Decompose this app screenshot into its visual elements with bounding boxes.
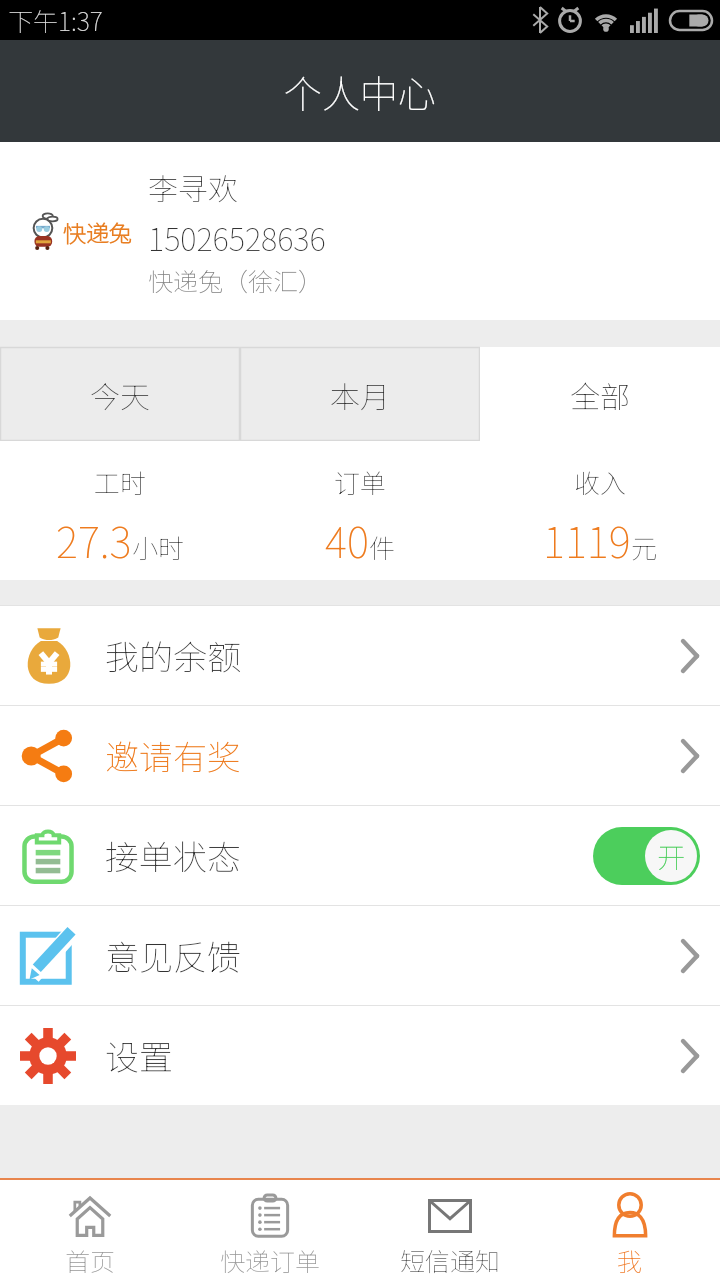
staticText: 接单状态 [105,831,241,880]
staticText: 我 [617,1242,643,1278]
button[interactable]: 今天 [0,347,240,441]
staticText: 40 [325,509,369,570]
button[interactable]: 设置 [0,1006,720,1105]
button[interactable]: 接单状态 [0,806,720,905]
staticText: 收入 [574,463,627,501]
staticText: 元 [631,528,658,566]
staticText: 小时 [132,528,185,566]
staticText: 订单 [334,463,387,501]
button[interactable]: 邀请有奖 [0,706,720,805]
button[interactable]: 我 [540,1180,720,1280]
staticText: 本月 [330,373,390,416]
staticText: 快递兔（徐汇） [148,262,324,298]
staticText: 快递兔 [63,215,132,248]
staticText: 短信通知 [400,1242,501,1278]
staticText: 工时 [94,463,147,501]
staticText: 27.3 [56,509,132,570]
staticText: 今天 [90,373,150,416]
button[interactable]: 短信通知 [360,1180,540,1280]
button[interactable]: 快递订单 [180,1180,360,1280]
button[interactable]: 快递兔 [0,142,720,320]
staticText: 设置 [105,1031,173,1080]
button[interactable]: 本月 [240,347,480,441]
staticText: 李寻欢 [148,165,238,208]
staticText: 意见反馈 [105,931,241,980]
button[interactable]: 首页 [0,1180,180,1280]
button[interactable]: 开 [593,827,700,885]
staticText: 全部 [570,373,630,416]
staticText: 个人中心 [284,64,437,119]
staticText: 快递订单 [220,1242,321,1278]
staticText: 件 [369,528,396,566]
staticText: 首页 [65,1242,116,1278]
staticText: 我的余额 [105,631,241,680]
button[interactable]: 全部 [480,347,720,441]
staticText: 1119 [543,509,631,570]
staticText: 开 [657,836,686,877]
staticText: 15026528636 [148,215,326,260]
button[interactable]: 我的余额 [0,606,720,705]
button[interactable]: 意见反馈 [0,906,720,1005]
staticText: 下午1:37 [8,2,103,38]
staticText: 邀请有奖 [105,731,241,780]
